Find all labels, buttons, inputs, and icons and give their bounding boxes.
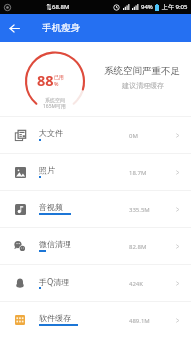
staticText: 手机瘦身 xyxy=(42,22,80,34)
staticText: 489.1M xyxy=(129,317,150,325)
staticText: 手Q清理 xyxy=(39,276,70,287)
staticText: 88 xyxy=(37,70,54,90)
staticText: 94% xyxy=(141,3,153,11)
staticText: 已用 xyxy=(54,74,64,80)
staticText: 335.5M xyxy=(129,206,150,214)
staticText: 系统空间严重不足 xyxy=(104,65,180,77)
button[interactable]: 大文件 xyxy=(0,116,191,153)
staticText: 大文件 xyxy=(39,128,63,138)
staticText: 165M可用 xyxy=(43,103,67,110)
button[interactable]: 照片 xyxy=(0,153,191,190)
staticText: 18.7M xyxy=(129,169,147,177)
staticText: 软件缓存 xyxy=(39,313,71,323)
button[interactable]: 音视频 xyxy=(0,190,191,227)
staticText: 68.8M xyxy=(52,3,70,11)
button[interactable]: 软件缓存 xyxy=(0,301,191,338)
staticText: 0M xyxy=(129,132,138,140)
button[interactable]: Back xyxy=(0,14,28,42)
staticText: % xyxy=(54,80,59,87)
staticText: 424K xyxy=(129,280,144,288)
staticText: 音视频 xyxy=(39,202,63,212)
staticText: 82.8M xyxy=(129,243,147,251)
button[interactable]: 手Q清理 xyxy=(0,264,191,301)
button[interactable]: 微信清理 xyxy=(0,227,191,264)
staticText: 照片 xyxy=(39,165,55,175)
staticText: 建议清理缓存 xyxy=(122,81,164,90)
staticText: 上午 9:05 xyxy=(162,3,188,11)
staticText: 微信清理 xyxy=(39,239,71,249)
staticText: 系统空间 xyxy=(45,97,65,103)
